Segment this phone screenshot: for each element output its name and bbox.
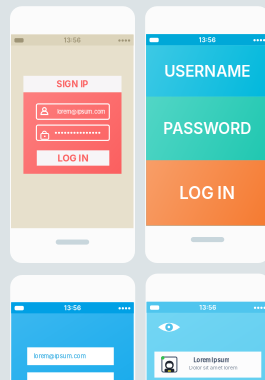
staticText: LOG IN [179, 183, 235, 203]
staticText: lorem@ipsum.com [57, 108, 105, 115]
staticText: Lorem Ipsum [193, 357, 229, 364]
staticText: PASSWORD [163, 119, 251, 138]
staticText: 13:56 [64, 36, 81, 44]
button[interactable] [36, 125, 109, 140]
staticText: 13:56 [64, 304, 81, 312]
staticText: Dolor sit amet lorem [189, 365, 238, 371]
staticText: 13:56 [199, 36, 216, 44]
button[interactable]: LOG IN [37, 150, 109, 166]
button[interactable] [27, 372, 114, 380]
staticText: USERNAME [164, 62, 250, 80]
staticText: LOG IN [57, 152, 88, 164]
button[interactable]: SIGN IP [23, 76, 121, 92]
staticText: lorem@ipsum.com [34, 353, 86, 360]
button[interactable]: lorem@ipsum.com [36, 104, 109, 119]
button[interactable]: Lorem Ipsum [154, 352, 261, 378]
button[interactable]: Show password [158, 322, 180, 333]
staticText: 13:56 [199, 304, 216, 311]
staticText: SIGN IP [56, 79, 88, 89]
button[interactable]: lorem@ipsum.com [27, 347, 114, 365]
